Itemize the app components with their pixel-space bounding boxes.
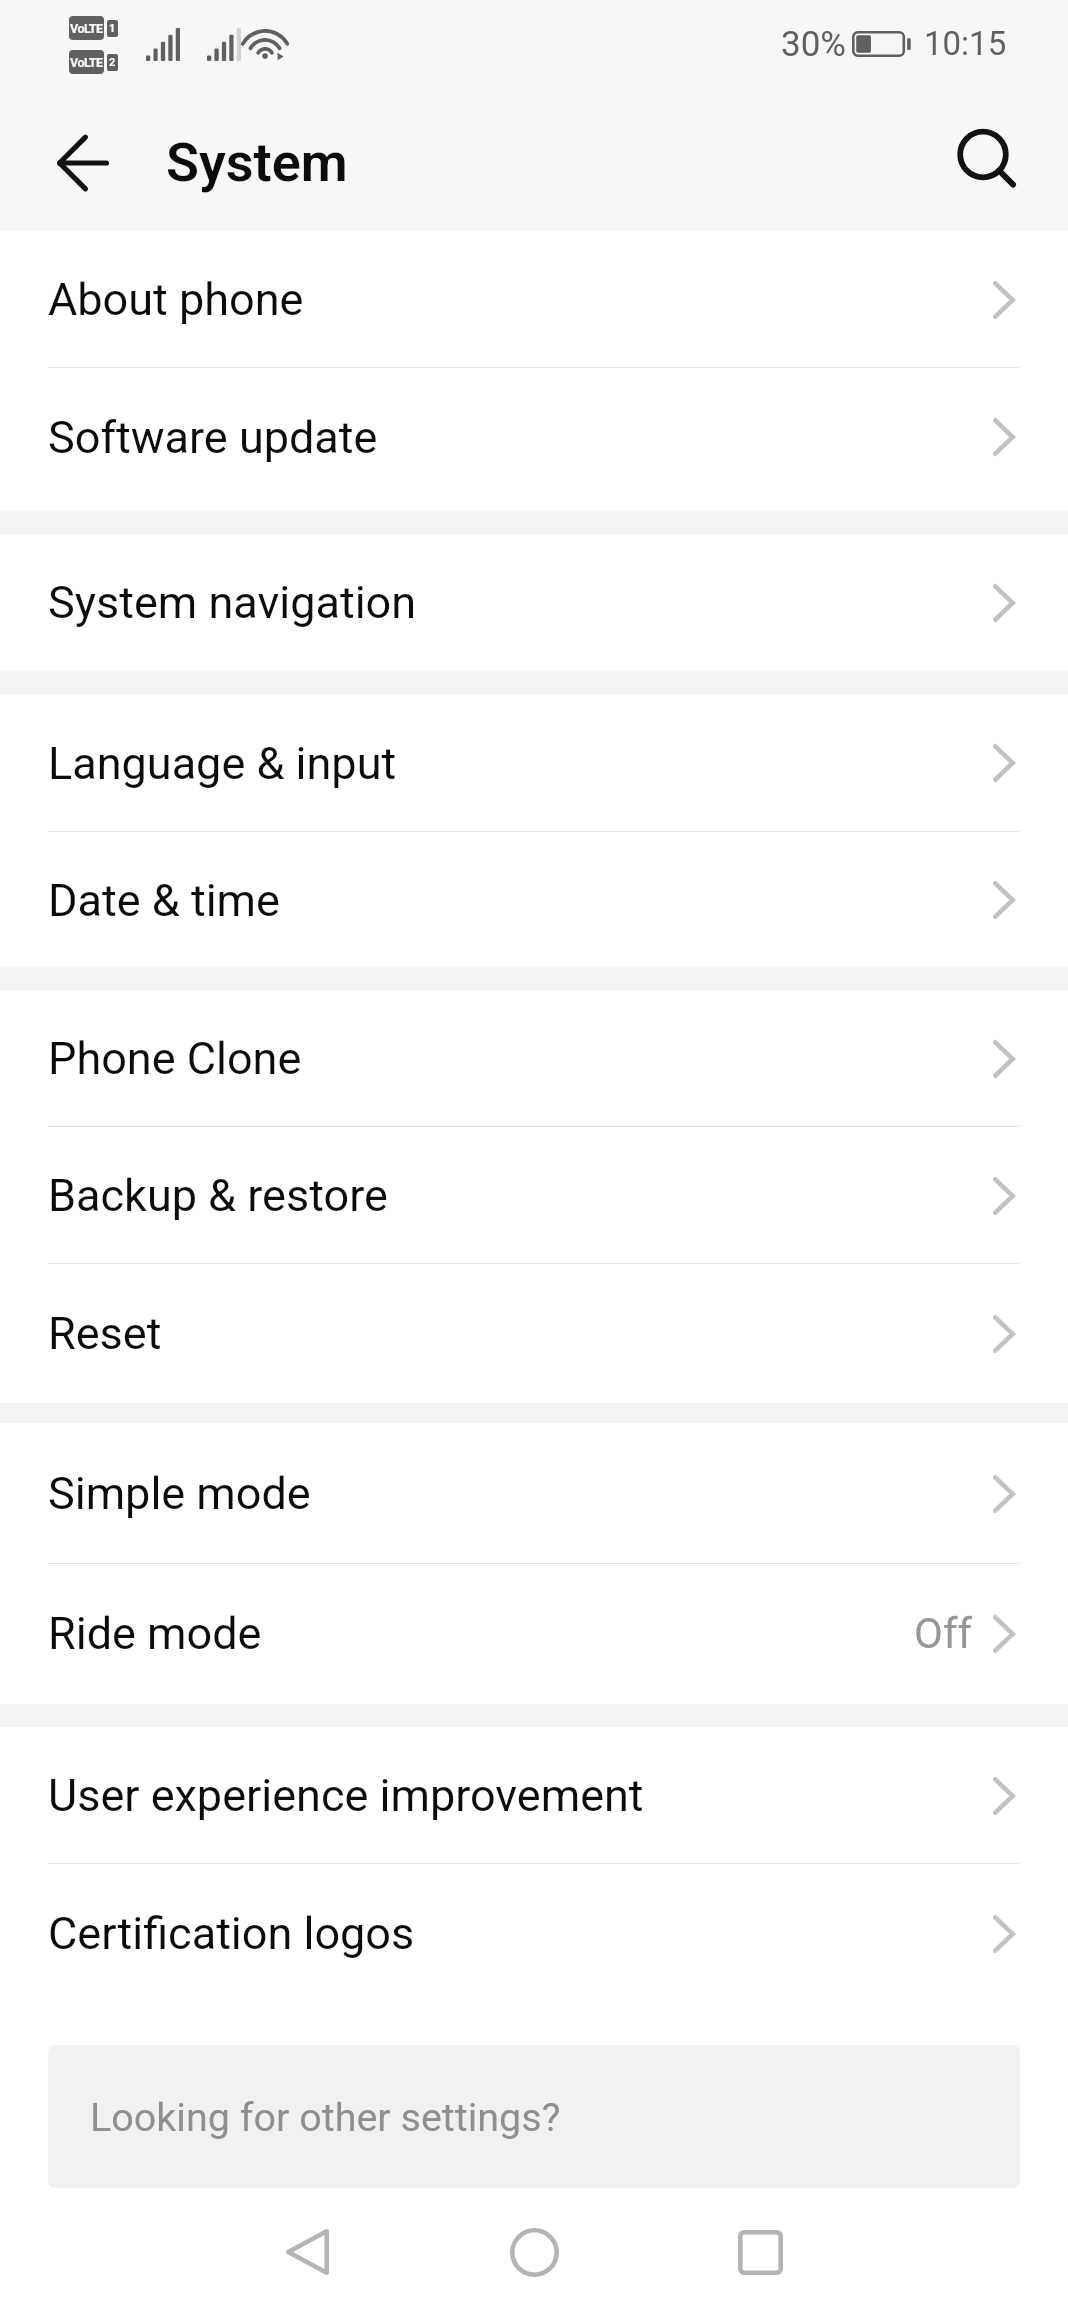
button[interactable]: Simple mode	[0, 1423, 1068, 1564]
button[interactable]: System navigation	[0, 534, 1068, 671]
staticText: 10:15	[924, 24, 1007, 63]
staticText: User experience improvement	[48, 1769, 644, 1822]
button[interactable]: Back	[0, 110, 166, 215]
button[interactable]: Looking for other settings?	[48, 2045, 1020, 2188]
staticText: Reset	[48, 1307, 162, 1360]
staticText: Ride mode	[48, 1607, 262, 1660]
staticText: Looking for other settings?	[90, 2094, 561, 2140]
button[interactable]: About phone	[0, 231, 1068, 368]
staticText: VoLTE	[70, 55, 103, 70]
button[interactable]: Phone Clone	[0, 990, 1068, 1127]
button[interactable]: Ride mode	[0, 1565, 1068, 1701]
staticText: About phone	[48, 273, 304, 326]
button[interactable]: User experience improvement	[0, 1727, 1068, 1864]
staticText: Backup & restore	[48, 1169, 388, 1222]
staticText: Date & time	[48, 874, 280, 927]
button[interactable]: Software update	[0, 369, 1068, 505]
button[interactable]: Recents	[647, 2190, 873, 2314]
staticText: 1	[109, 22, 116, 35]
button[interactable]: Back	[194, 2190, 420, 2314]
button[interactable]: Date & time	[0, 833, 1068, 967]
staticText: Language & input	[48, 737, 397, 790]
staticText: Certification logos	[48, 1907, 415, 1960]
staticText: VoLTE	[70, 21, 103, 36]
button[interactable]: Reset	[0, 1265, 1068, 1402]
staticText: Simple mode	[48, 1467, 311, 1520]
staticText: Software update	[48, 411, 378, 464]
staticText: System	[166, 131, 348, 194]
staticText: System navigation	[48, 576, 417, 629]
staticText: 2	[109, 56, 116, 69]
button[interactable]: Certification logos	[0, 1865, 1068, 2002]
button[interactable]: Home	[421, 2190, 647, 2314]
button[interactable]: Backup & restore	[0, 1127, 1068, 1264]
button[interactable]: Language & input	[0, 694, 1068, 832]
staticText: 30%	[781, 24, 846, 65]
staticText: Off	[914, 1609, 973, 1658]
button[interactable]: Search	[908, 110, 1068, 205]
staticText: Phone Clone	[48, 1032, 302, 1085]
